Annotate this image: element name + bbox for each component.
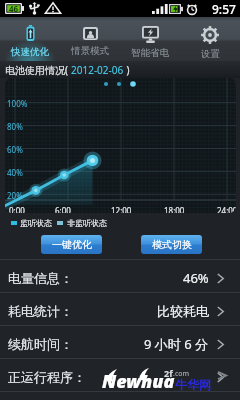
staticText: 0:00: [9, 205, 25, 213]
staticText: ): [124, 63, 130, 77]
button[interactable]: 设置: [180, 17, 240, 61]
staticText: .com: [173, 369, 190, 379]
staticText: 正运行程序：: [8, 369, 86, 385]
button[interactable]: 智能省电: [120, 17, 180, 61]
staticText: 9:57: [212, 1, 236, 17]
staticText: 60%: [7, 144, 23, 155]
button[interactable]: 情景模式: [60, 17, 120, 61]
staticText: 牛华网: [175, 377, 211, 392]
button[interactable]: 模式切换: [141, 235, 202, 254]
button[interactable]: 续航时间：: [0, 326, 240, 358]
staticText: 监听状态: [20, 218, 52, 228]
staticText: 46: [9, 3, 19, 14]
staticText: 情景模式: [71, 45, 109, 57]
staticText: Newhua: [102, 369, 175, 394]
staticText: 24:00: [217, 205, 236, 213]
staticText: 100%: [7, 98, 28, 109]
staticText: 2012-02-06: [71, 63, 124, 77]
staticText: 46%: [183, 269, 209, 287]
staticText: 2f: [164, 367, 173, 379]
staticText: 设置: [201, 48, 220, 60]
staticText: (: [65, 63, 71, 77]
staticText: 智能省电: [131, 47, 169, 59]
button[interactable]: 一键优化: [41, 235, 102, 254]
staticText: 耗电统计：: [8, 303, 73, 319]
staticText: 18:00: [164, 205, 185, 213]
staticText: 续航时间：: [8, 336, 73, 352]
staticText: 一键优化: [52, 238, 92, 251]
staticText: 模式切换: [152, 238, 192, 251]
button[interactable]: 耗电统计：: [0, 293, 240, 325]
staticText: 6:00: [55, 205, 71, 213]
staticText: 电池使用情况: [5, 64, 65, 77]
button[interactable]: 正运行程序：: [0, 359, 240, 391]
staticText: 20%: [7, 190, 23, 201]
staticText: 80%: [7, 121, 23, 132]
staticText: 9 小时 6 分: [144, 335, 209, 353]
button[interactable]: 电量信息：: [0, 260, 240, 292]
button[interactable]: 快速优化: [0, 17, 60, 61]
staticText: 12:00: [111, 205, 132, 213]
staticText: 比较耗电: [157, 303, 209, 319]
staticText: 快速优化: [11, 46, 49, 58]
staticText: 40%: [7, 167, 23, 178]
staticText: 非监听状态: [67, 218, 107, 228]
staticText: 电量信息：: [8, 270, 73, 286]
